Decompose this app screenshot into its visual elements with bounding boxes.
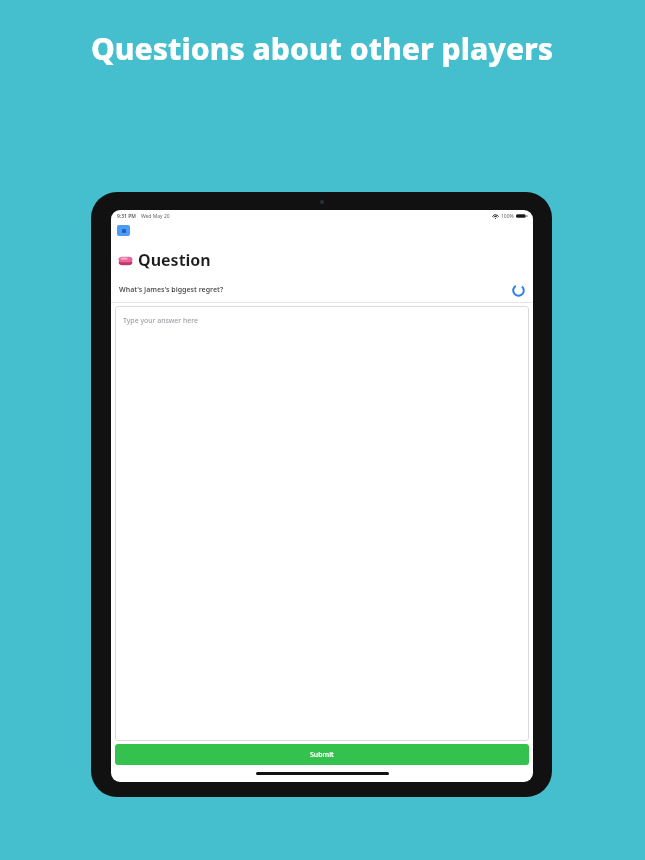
other: Loading (510, 282, 526, 298)
staticText: Submit (310, 750, 334, 760)
staticText: Questions about other players (91, 28, 554, 69)
staticText: Question (138, 249, 211, 271)
staticText: Type your answer here (123, 316, 198, 326)
button[interactable]: App icon (117, 225, 130, 236)
button[interactable]: Submit (115, 744, 529, 765)
button[interactable]: Type your answer here (115, 306, 529, 741)
staticText: What's James's biggest regret? (119, 285, 224, 295)
staticText: 100% (501, 213, 514, 220)
staticText: Wed May 20 (141, 213, 170, 220)
staticText: 9:31 PM (117, 213, 136, 220)
